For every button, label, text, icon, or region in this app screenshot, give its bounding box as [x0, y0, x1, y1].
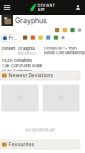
staticText: Favourites — [9, 142, 35, 147]
button[interactable]: Account — [71, 0, 85, 15]
staticText: 1.8K Comments Made — [2, 63, 42, 68]
staticText: Male/Brazil — [18, 51, 36, 55]
staticText: Grayphus — [15, 16, 47, 25]
staticText: ART — [37, 7, 44, 12]
button[interactable]: Profile — [1, 34, 20, 42]
button[interactable]: Favourites — [0, 140, 80, 149]
staticText: No deviations yet — [25, 128, 54, 132]
button[interactable]: Menu — [0, 0, 14, 15]
staticText: 14.4K Deviations — [2, 58, 32, 63]
staticText: Needs Core Membership — [44, 51, 85, 55]
staticText: 15.8K Pageviews — [2, 69, 32, 74]
staticText: Grayphus — [18, 46, 35, 51]
staticText: Deviant — [2, 46, 15, 51]
staticText: DEVIANT — [37, 3, 54, 7]
staticText: Profile — [8, 36, 18, 41]
staticText: Deviant for 1+ Years — [44, 46, 77, 50]
staticText: Newest Deviations — [9, 73, 54, 78]
button[interactable]: Newest Deviations — [0, 71, 80, 80]
